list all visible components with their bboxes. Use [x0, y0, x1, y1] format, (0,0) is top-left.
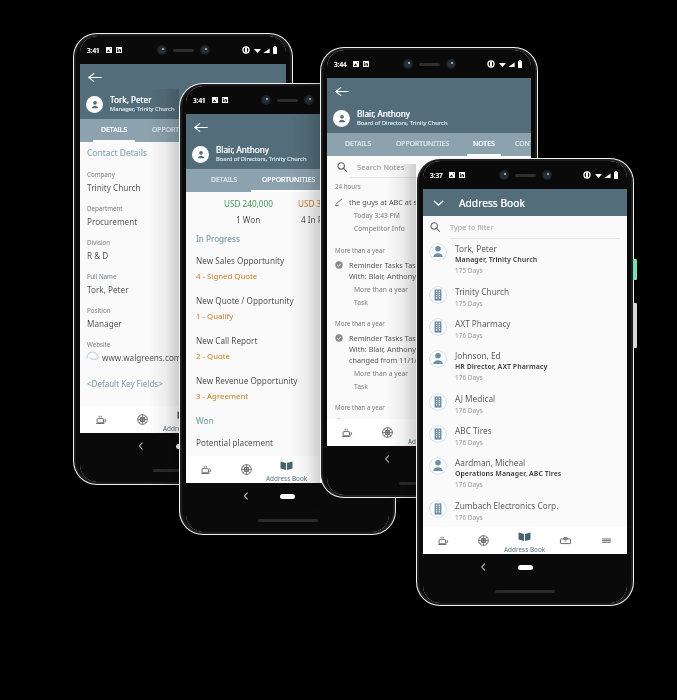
- button[interactable]: Address Book: [504, 527, 545, 554]
- button[interactable]: Activities: [186, 456, 226, 483]
- button[interactable]: Opportunities: [449, 419, 490, 446]
- button[interactable]: Type to filter: [423, 216, 627, 238]
- button[interactable]: Zumbach Electronics Corp.: [423, 496, 627, 527]
- staticText: DETAILS: [345, 139, 372, 148]
- staticText: New Revenue Opportunity: [196, 375, 298, 386]
- staticText: Company: [87, 170, 115, 178]
- button[interactable]: Collapse: [423, 189, 627, 216]
- staticText: Competitor Info: [354, 224, 405, 233]
- button[interactable]: AXT Pharmacy: [423, 314, 627, 346]
- button[interactable]: Back: [87, 70, 102, 85]
- staticText: Blair, Anthony: [357, 108, 411, 119]
- staticText: Full Name: [87, 272, 117, 280]
- button[interactable]: Address Book: [163, 406, 204, 433]
- staticText: More than a year: [354, 285, 409, 294]
- staticText: 3:44: [334, 60, 347, 69]
- button[interactable]: Back: [334, 84, 349, 99]
- button[interactable]: Johnson, Ed: [423, 346, 627, 389]
- staticText: USD 3,600: [298, 198, 338, 209]
- button[interactable]: Back: [193, 120, 208, 135]
- button[interactable]: DETAILS: [200, 169, 248, 192]
- button[interactable]: OPPORTUNITIES: [138, 119, 220, 142]
- button[interactable]: Tork, Peter: [423, 239, 627, 282]
- staticText: With: Blair, Anthony N: [349, 271, 424, 281]
- button[interactable]: Dashboard: [367, 419, 408, 446]
- button[interactable]: ABC Tires: [423, 421, 627, 453]
- button[interactable]: Activities: [423, 527, 463, 554]
- button[interactable]: New Sales Opportunity: [196, 255, 389, 295]
- button[interactable]: AJ Medical: [423, 389, 627, 421]
- button[interactable]: Reminder Tasks Task: [335, 260, 531, 307]
- staticText: CONTACTS: [515, 139, 531, 148]
- button[interactable]: Activities: [327, 419, 367, 446]
- button[interactable]: OPPORTUNITIES: [248, 169, 330, 192]
- button[interactable]: OPPORTUNITIES: [382, 133, 464, 156]
- staticText: 24 hours: [335, 182, 361, 190]
- button[interactable]: More: [348, 456, 389, 483]
- staticText: Blair, Anthony: [216, 144, 270, 155]
- staticText: Task: [354, 298, 368, 307]
- button[interactable]: Aardman, Micheal: [423, 453, 627, 496]
- staticText: New Sales Opportunity: [196, 255, 285, 266]
- staticText: Address Book: [459, 196, 525, 210]
- button[interactable]: the guys at ABC at sh: [335, 197, 531, 233]
- staticText: www.walgreens.com: [102, 352, 182, 363]
- staticText: R & D: [87, 250, 109, 261]
- staticText: Zumbach Electronics Corp.: [455, 500, 559, 511]
- staticText: New Quote / Opportunity: [196, 295, 294, 306]
- button[interactable]: More: [490, 419, 531, 446]
- button[interactable]: Opportunities: [545, 527, 586, 554]
- staticText: 4 In Prog: [301, 214, 336, 225]
- button[interactable]: New Call Report: [196, 335, 389, 375]
- staticText: 4 - Signed Quote: [196, 271, 258, 282]
- staticText: More than a year: [335, 319, 385, 327]
- button[interactable]: NOTES: [464, 133, 504, 156]
- button[interactable]: Opportunities: [307, 456, 348, 483]
- staticText: 2 - Quote: [196, 351, 230, 362]
- button[interactable]: NOTES: [330, 169, 370, 192]
- button[interactable]: Trinity Church: [423, 282, 627, 314]
- staticText: AXT Pharmacy: [455, 318, 511, 329]
- button[interactable]: New Revenue Opportunity: [196, 375, 389, 415]
- staticText: Contact Details: [87, 147, 147, 159]
- staticText: 3:41: [193, 96, 206, 105]
- staticText: Trinity Church: [87, 182, 141, 193]
- button[interactable]: DETAILS: [90, 119, 138, 142]
- button[interactable]: Dashboard: [226, 456, 266, 483]
- staticText: Tork, Peter: [87, 284, 129, 295]
- staticText: changed from 11/1/2: [349, 355, 422, 365]
- button[interactable]: Reminder Tasks Task: [335, 417, 531, 419]
- staticText: 176 Days: [455, 373, 483, 382]
- button[interactable]: Opportunities: [204, 406, 245, 433]
- staticText: Manager, Trinity Church: [455, 255, 538, 264]
- staticText: Website: [87, 340, 111, 348]
- staticText: 3 - Agreement: [196, 391, 249, 402]
- button[interactable]: Activities: [80, 406, 122, 433]
- button[interactable]: New Quote / Opportunity: [196, 295, 389, 335]
- staticText: Won: [196, 415, 214, 426]
- staticText: 175 Days: [455, 266, 483, 275]
- staticText: OPPORTUNITIES: [152, 125, 206, 134]
- staticText: In Progress: [196, 233, 240, 244]
- button[interactable]: Address Book: [266, 456, 307, 483]
- staticText: Reminder Tasks Task: [349, 260, 420, 270]
- staticText: Address Book: [163, 424, 204, 433]
- button[interactable]: Dashboard: [122, 406, 163, 433]
- staticText: Manager, Trinity Church: [110, 105, 175, 113]
- button[interactable]: Reminder Tasks Task: [335, 333, 531, 391]
- button[interactable]: DETAILS: [334, 133, 382, 156]
- staticText: HR Director, AXT Pharmacy: [455, 362, 548, 371]
- staticText: OPPORTUNITIES: [262, 175, 316, 184]
- staticText: Reminder Tasks Task: [349, 333, 420, 343]
- button[interactable]: CONTACTS: [504, 133, 531, 156]
- button[interactable]: More: [586, 527, 627, 554]
- other: Collapse: [432, 196, 445, 209]
- staticText: Address Book: [504, 545, 545, 554]
- staticText: Aardman, Micheal: [455, 457, 526, 468]
- staticText: AJ Medical: [455, 393, 496, 404]
- staticText: USD 0: [359, 198, 383, 209]
- button[interactable]: Address Book: [408, 419, 449, 446]
- button[interactable]: Dashboard: [463, 527, 504, 554]
